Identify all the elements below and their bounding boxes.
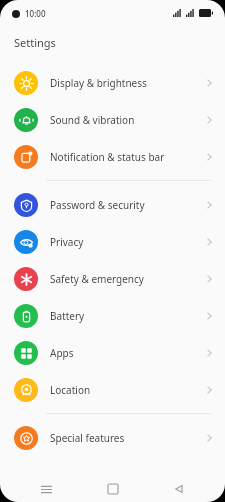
- staticText: Special features: [50, 431, 206, 445]
- staticText: 10:00: [25, 8, 46, 19]
- button[interactable]: Recent apps: [26, 476, 66, 502]
- staticText: Notification & status bar: [50, 150, 206, 164]
- button[interactable]: Sound & vibration: [0, 101, 225, 138]
- button[interactable]: Password & security: [0, 186, 225, 223]
- staticText: Settings: [14, 35, 56, 50]
- staticText: Sound & vibration: [50, 113, 206, 127]
- staticText: Display & brightness: [50, 76, 206, 90]
- staticText: Privacy: [50, 235, 206, 249]
- button[interactable]: Safety & emergency: [0, 260, 225, 297]
- button[interactable]: Notification & status bar: [0, 138, 225, 175]
- staticText: Apps: [50, 346, 206, 360]
- staticText: Battery: [50, 309, 206, 323]
- button[interactable]: Home: [93, 476, 133, 502]
- staticText: Password & security: [50, 198, 206, 212]
- button[interactable]: Display & brightness: [0, 64, 225, 101]
- staticText: Safety & emergency: [50, 272, 206, 286]
- button[interactable]: Battery: [0, 297, 225, 334]
- button[interactable]: Back: [159, 476, 199, 502]
- button[interactable]: Special features: [0, 419, 225, 456]
- button[interactable]: Privacy: [0, 223, 225, 260]
- button[interactable]: Location: [0, 371, 225, 408]
- staticText: Location: [50, 383, 206, 397]
- button[interactable]: Apps: [0, 334, 225, 371]
